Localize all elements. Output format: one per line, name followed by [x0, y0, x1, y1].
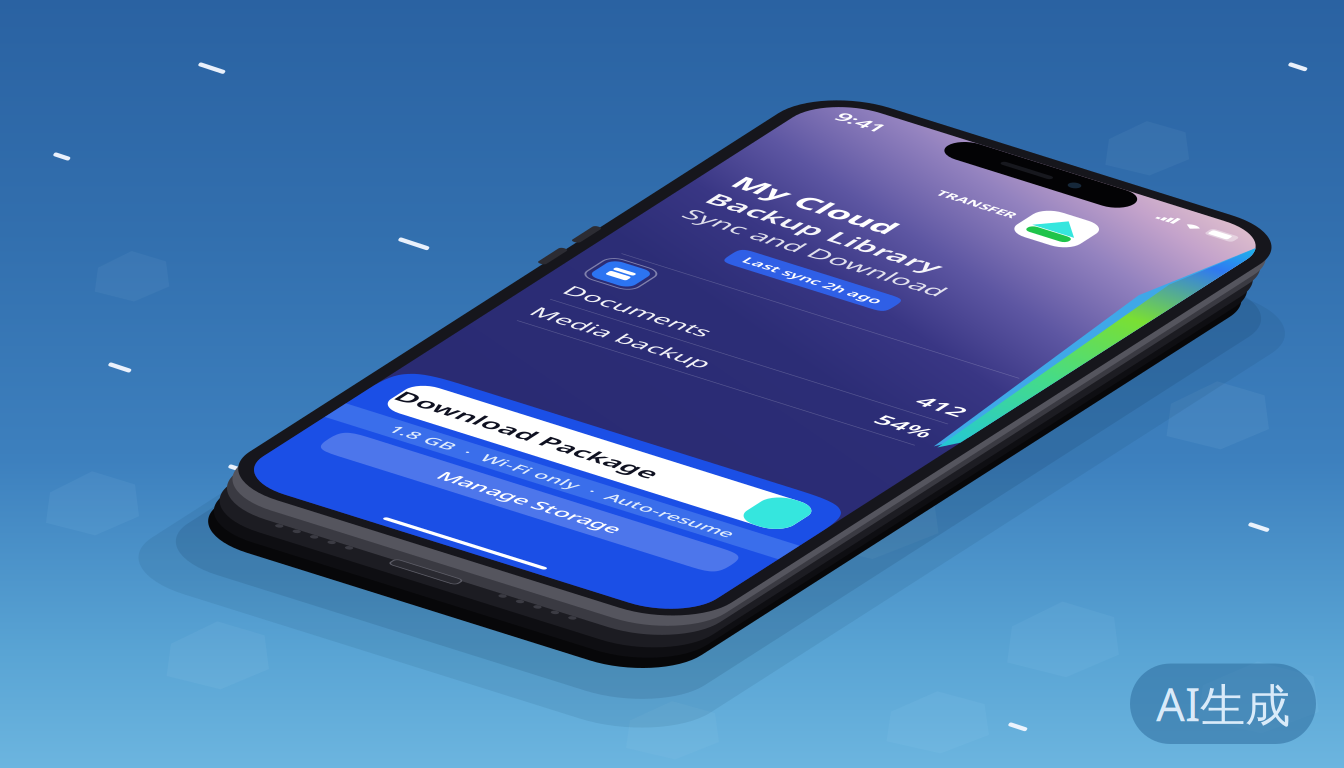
- staticText: 412: [327, 392, 366, 422]
- staticText: AI生成: [1156, 674, 1290, 734]
- button[interactable]: Download Package: [22, 614, 368, 670]
- staticText: Download Package: [22, 626, 244, 658]
- button[interactable]: Media backup: [24, 431, 366, 478]
- staticText: 54%: [320, 439, 366, 469]
- button[interactable]: Last sync 2h ago: [88, 265, 229, 295]
- staticText: My Cloud: [24, 147, 161, 186]
- button[interactable]: Documents: [24, 384, 366, 431]
- staticText: Last sync 2h ago: [100, 270, 217, 290]
